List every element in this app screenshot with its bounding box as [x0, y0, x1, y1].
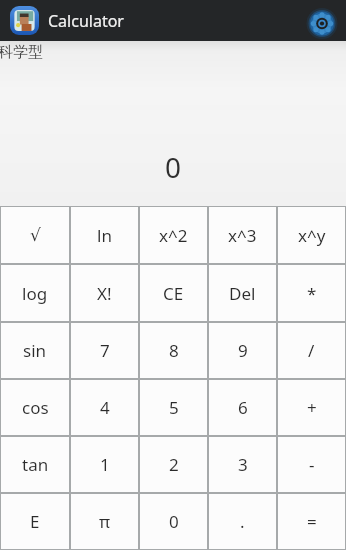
staticText: .	[240, 510, 245, 533]
staticText: 0	[169, 510, 179, 533]
button[interactable]: 2	[139, 436, 208, 493]
staticText: cos	[22, 396, 49, 419]
staticText: Del	[229, 282, 256, 305]
button[interactable]: sin	[0, 322, 70, 379]
staticText: 4	[100, 396, 110, 419]
button[interactable]: cos	[0, 379, 70, 436]
button[interactable]: .	[208, 493, 277, 550]
button[interactable]: x^3	[208, 206, 277, 264]
button[interactable]: 0	[139, 493, 208, 550]
staticText: /	[308, 339, 315, 362]
staticText: 5	[169, 396, 179, 419]
staticText: 0	[165, 148, 182, 186]
button[interactable]: CE	[139, 264, 208, 322]
button[interactable]: X!	[70, 264, 139, 322]
button[interactable]: +	[277, 379, 346, 436]
button[interactable]: 1	[70, 436, 139, 493]
staticText: 6	[238, 396, 248, 419]
staticText: x^2	[159, 224, 188, 247]
staticText: =	[307, 510, 317, 533]
staticText: -	[309, 453, 315, 476]
staticText: X!	[97, 282, 112, 305]
button[interactable]: /	[277, 322, 346, 379]
button[interactable]: tan	[0, 436, 70, 493]
staticText: x^3	[228, 224, 257, 247]
staticText: ln	[97, 224, 112, 247]
button[interactable]: 8	[139, 322, 208, 379]
button[interactable]	[302, 1, 342, 41]
staticText: +	[307, 396, 317, 419]
staticText: π	[99, 510, 111, 533]
staticText: log	[22, 282, 48, 305]
button[interactable]: √	[0, 206, 70, 264]
button[interactable]: 9	[208, 322, 277, 379]
button[interactable]: 4	[70, 379, 139, 436]
staticText: 2	[169, 453, 179, 476]
staticText: E	[30, 510, 40, 533]
staticText: 科学型	[0, 43, 43, 62]
staticText: 9	[238, 339, 248, 362]
button[interactable]: *	[277, 264, 346, 322]
staticText: 7	[100, 339, 110, 362]
button[interactable]: 7	[70, 322, 139, 379]
staticText: 1	[100, 453, 110, 476]
staticText: x^y	[298, 224, 326, 247]
staticText: *	[307, 282, 317, 305]
button[interactable]: Del	[208, 264, 277, 322]
button[interactable]: E	[0, 493, 70, 550]
button[interactable]: 5	[139, 379, 208, 436]
staticText: Calculator	[48, 10, 124, 32]
staticText: tan	[22, 453, 49, 476]
button[interactable]: log	[0, 264, 70, 322]
button[interactable]: -	[277, 436, 346, 493]
staticText: 8	[169, 339, 179, 362]
button[interactable]: =	[277, 493, 346, 550]
button[interactable]: 6	[208, 379, 277, 436]
staticText: √	[30, 225, 41, 245]
button[interactable]: ln	[70, 206, 139, 264]
staticText: 3	[238, 453, 248, 476]
button[interactable]: 3	[208, 436, 277, 493]
button[interactable]: π	[70, 493, 139, 550]
staticText: sin	[23, 339, 47, 362]
staticText: CE	[163, 282, 184, 305]
button[interactable]: x^y	[277, 206, 346, 264]
button[interactable]: x^2	[139, 206, 208, 264]
